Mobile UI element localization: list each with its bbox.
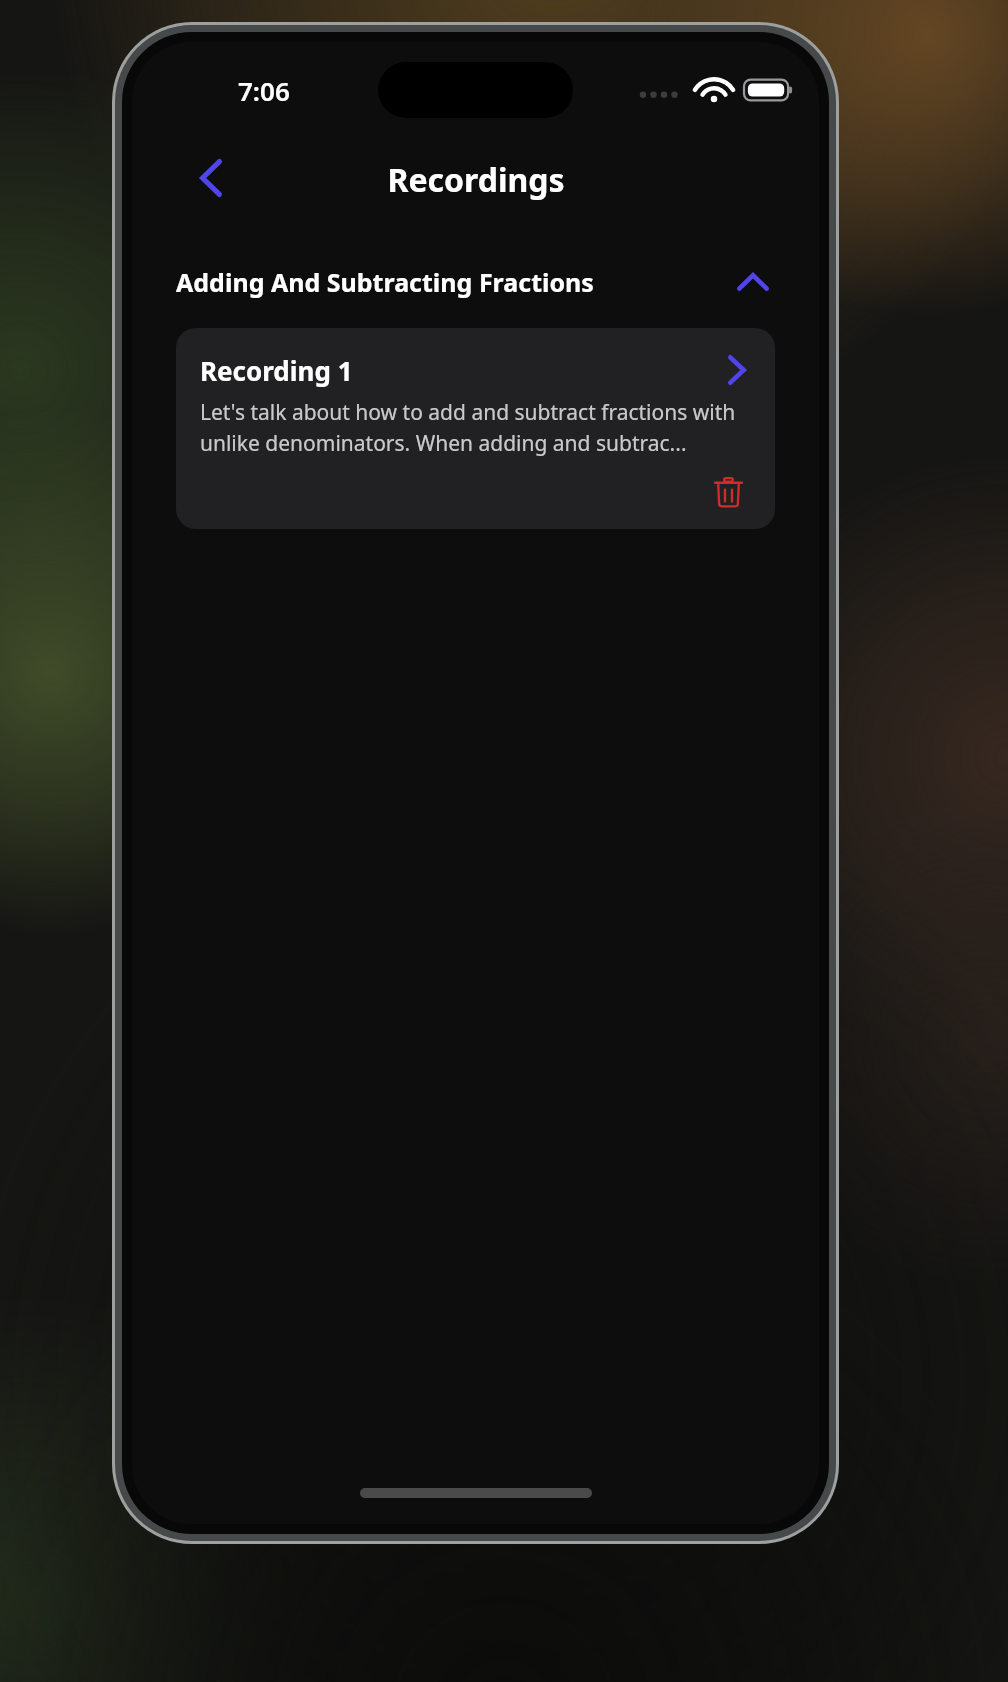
staticText: Recording 1 (200, 353, 717, 388)
staticText: Recordings (387, 158, 565, 202)
other: Open recording (717, 350, 757, 390)
staticText: Let's talk about how to add and subtract… (200, 398, 757, 457)
staticText: 7:06 (238, 73, 290, 108)
button[interactable]: Back (180, 147, 242, 209)
button[interactable]: Adding And Subtracting Fractions (176, 258, 775, 306)
staticText: Adding And Subtracting Fractions (176, 265, 731, 299)
button[interactable]: Recording 1 (176, 328, 775, 529)
button[interactable]: Delete recording (705, 469, 751, 515)
other: Collapse section (731, 260, 775, 304)
